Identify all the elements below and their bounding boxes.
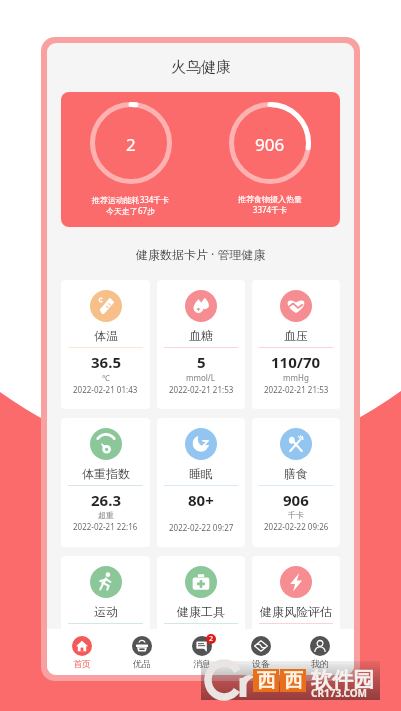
staticText: 2022-02-22 09:27	[169, 522, 234, 533]
staticText: 体温	[94, 328, 118, 343]
button[interactable]: 血压	[252, 280, 340, 409]
staticText: 2	[126, 133, 136, 156]
staticText: mmol/L	[186, 372, 216, 383]
button[interactable]: 2	[61, 92, 340, 227]
staticText: 血压	[284, 328, 308, 343]
staticText: 西	[257, 669, 276, 692]
staticText: 首页	[73, 658, 91, 669]
staticText: 2022-02-21 21:53	[264, 384, 329, 395]
staticText: 今天走了67步	[61, 205, 200, 216]
button[interactable]: 健康风险评估	[252, 556, 340, 675]
staticText: 906	[283, 490, 309, 510]
staticText: 体重指数	[82, 466, 130, 481]
staticText: 睡眠	[189, 466, 213, 481]
staticText: 消息	[193, 658, 211, 669]
staticText: 110/70	[271, 352, 321, 372]
staticText: 膳食	[284, 466, 308, 481]
button[interactable]: 膳食	[252, 418, 340, 547]
button[interactable]: 优品	[112, 629, 172, 675]
staticText: 推荐运动能耗334千卡	[61, 194, 200, 205]
staticText: 火鸟健康	[171, 58, 231, 77]
staticText: 2022-02-21 01:43	[73, 384, 138, 395]
staticText: 26.3	[91, 490, 121, 510]
staticText: ℃	[102, 372, 110, 383]
staticText: 软件园	[311, 667, 374, 693]
staticText: 设备	[252, 658, 270, 669]
staticText: 千卡	[288, 510, 304, 520]
button[interactable]: 体温	[61, 280, 150, 409]
staticText: 906	[255, 133, 285, 156]
button[interactable]: 2	[172, 629, 231, 675]
staticText: 3374千卡	[200, 204, 340, 215]
staticText: 血糖	[189, 328, 213, 343]
button[interactable]: 健康工具	[157, 556, 245, 675]
button[interactable]: 血糖	[157, 280, 245, 409]
staticText: 80+	[188, 490, 214, 510]
button[interactable]: 首页	[52, 629, 112, 675]
staticText: 推荐食物摄入热量	[200, 194, 340, 204]
button[interactable]: 体重指数	[61, 418, 150, 547]
staticText: 2022-02-21 22:16	[73, 521, 138, 532]
button[interactable]: 睡眠	[157, 418, 245, 547]
staticText: 36.5	[91, 352, 121, 372]
button[interactable]: 设备	[231, 629, 290, 675]
staticText: mmHg	[283, 372, 309, 383]
staticText: 健康数据卡片 · 管理健康	[136, 246, 266, 262]
staticText: 2022-02-21 21:53	[169, 384, 234, 395]
staticText: 我的	[311, 658, 329, 669]
staticText: 优品	[133, 658, 151, 669]
button[interactable]: 运动	[61, 556, 150, 675]
staticText: 超重	[98, 510, 114, 520]
staticText: 2022-02-22 09:26	[264, 521, 329, 532]
staticText: 健康风险评估	[260, 604, 332, 619]
button[interactable]: 我的	[290, 629, 349, 675]
staticText: CR173.COM	[311, 686, 368, 700]
staticText: 健康工具	[177, 604, 225, 619]
staticText: 西	[284, 669, 303, 692]
staticText: 运动	[94, 604, 118, 619]
staticText: 2	[209, 634, 214, 644]
staticText: 5	[197, 352, 206, 372]
